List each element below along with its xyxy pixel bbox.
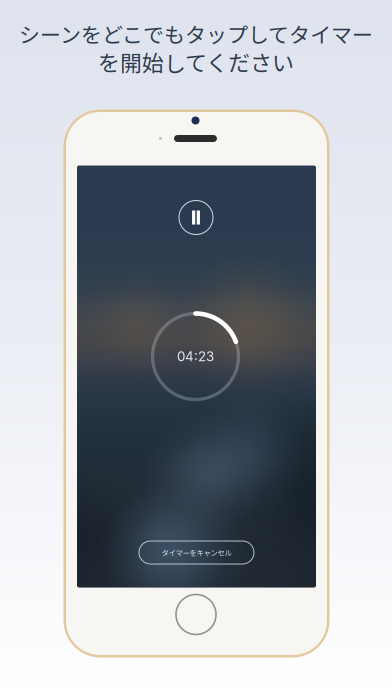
button[interactable]: タイマーをキャンセル — [139, 541, 254, 564]
staticText: シーンをどこでもタップしてタイマー — [19, 18, 373, 49]
button[interactable]: 一時停止 — [174, 195, 218, 239]
staticText: を開始してください — [98, 46, 294, 78]
staticText: タイマーをキャンセル — [161, 547, 231, 558]
staticText: 04:23 — [177, 348, 214, 364]
